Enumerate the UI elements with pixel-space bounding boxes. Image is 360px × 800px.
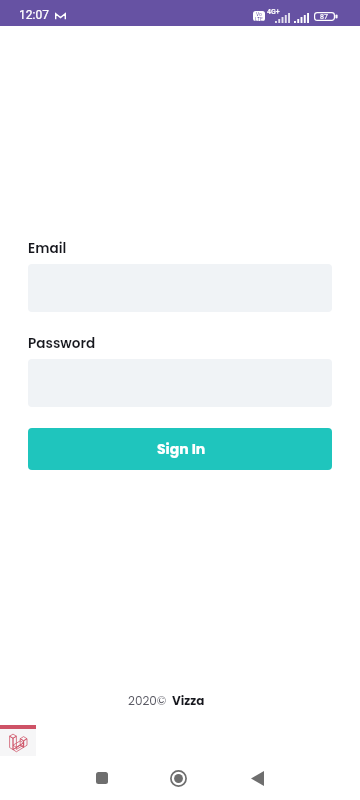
- staticText: LTE: [255, 16, 263, 22]
- staticText: 87: [320, 13, 328, 21]
- staticText: 4G+: [267, 8, 280, 16]
- staticText: Vo: [256, 11, 262, 17]
- button[interactable]: Sign In: [28, 428, 332, 470]
- staticText: 2020©: [128, 692, 167, 709]
- button[interactable]: Laravel Debugbar: [0, 725, 36, 758]
- button[interactable]: Home: [162, 762, 194, 794]
- staticText: Sign In: [157, 439, 206, 459]
- button[interactable]: Recent apps: [86, 762, 118, 794]
- staticText: Email: [28, 239, 67, 258]
- staticText: Vizza: [172, 692, 205, 709]
- button[interactable]: Back: [241, 762, 273, 794]
- staticText: Password: [28, 334, 96, 353]
- staticText: 12:07: [19, 8, 49, 22]
